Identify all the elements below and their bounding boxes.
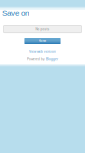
staticText: No posts bbox=[35, 27, 49, 31]
button[interactable]: Blogger bbox=[46, 57, 58, 61]
button[interactable]: View web version bbox=[0, 50, 85, 53]
staticText: Save on bbox=[2, 9, 29, 17]
staticText: Blogger bbox=[46, 57, 58, 61]
staticText: Home bbox=[38, 39, 46, 43]
button[interactable]: Home bbox=[24, 38, 60, 44]
staticText: View web version bbox=[29, 50, 56, 53]
staticText: Powered by bbox=[27, 57, 45, 61]
